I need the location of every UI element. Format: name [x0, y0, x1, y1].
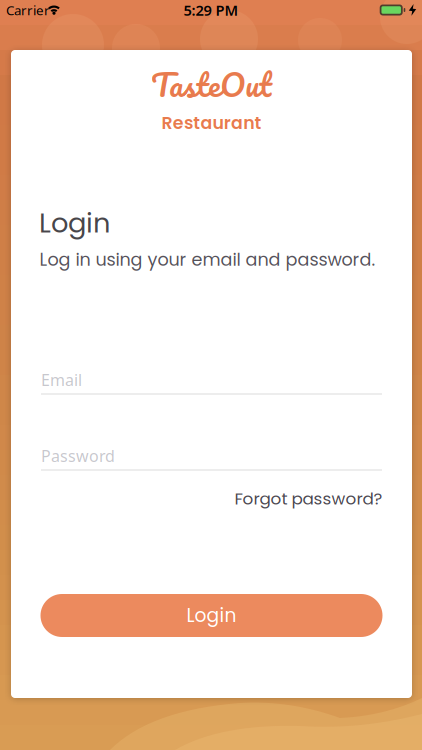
- button[interactable]: Login: [40, 594, 382, 637]
- button[interactable]: Email: [41, 364, 382, 394]
- staticText: Forgot password?: [234, 487, 382, 510]
- button[interactable]: Password: [41, 440, 382, 470]
- button[interactable]: Forgot password?: [40, 487, 382, 510]
- staticText: Carrier: [6, 1, 50, 19]
- staticText: Log in using your email and password.: [39, 247, 375, 272]
- staticText: Password: [41, 445, 115, 466]
- staticText: Login: [186, 602, 236, 628]
- staticText: Email: [41, 369, 82, 390]
- staticText: 5:29 PM: [183, 0, 238, 20]
- staticText: Login: [39, 204, 110, 242]
- staticText: Restaurant: [162, 111, 261, 135]
- staticText: TasteOut: [151, 57, 272, 111]
